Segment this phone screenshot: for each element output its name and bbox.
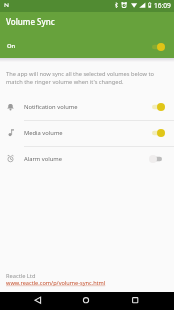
staticText: Media volume [24,129,63,137]
staticText: Notification volume [24,103,78,111]
button[interactable]: Switch on [149,102,165,112]
button[interactable]: On [0,36,174,58]
button[interactable]: Switch off [149,154,165,164]
button[interactable]: Switch on [149,42,165,52]
button[interactable]: Back [24,292,52,310]
button[interactable]: Switch on [149,128,165,138]
button[interactable]: Alarm volume [0,146,174,172]
staticText: 16:09 [154,1,171,10]
button[interactable]: Media volume [0,120,174,146]
staticText: Alarm volume [24,155,62,163]
button[interactable]: www.reactle.com/p/volume-sync.html [6,279,106,287]
button[interactable]: Home [72,292,100,310]
staticText: On [7,42,16,50]
staticText: Volume Sync [6,16,55,27]
button[interactable]: Notification volume [0,94,174,120]
staticText: The app will now sync all the selected v… [6,70,157,85]
button[interactable]: Recents [122,292,150,310]
staticText: Reactle Ltd [6,272,36,280]
